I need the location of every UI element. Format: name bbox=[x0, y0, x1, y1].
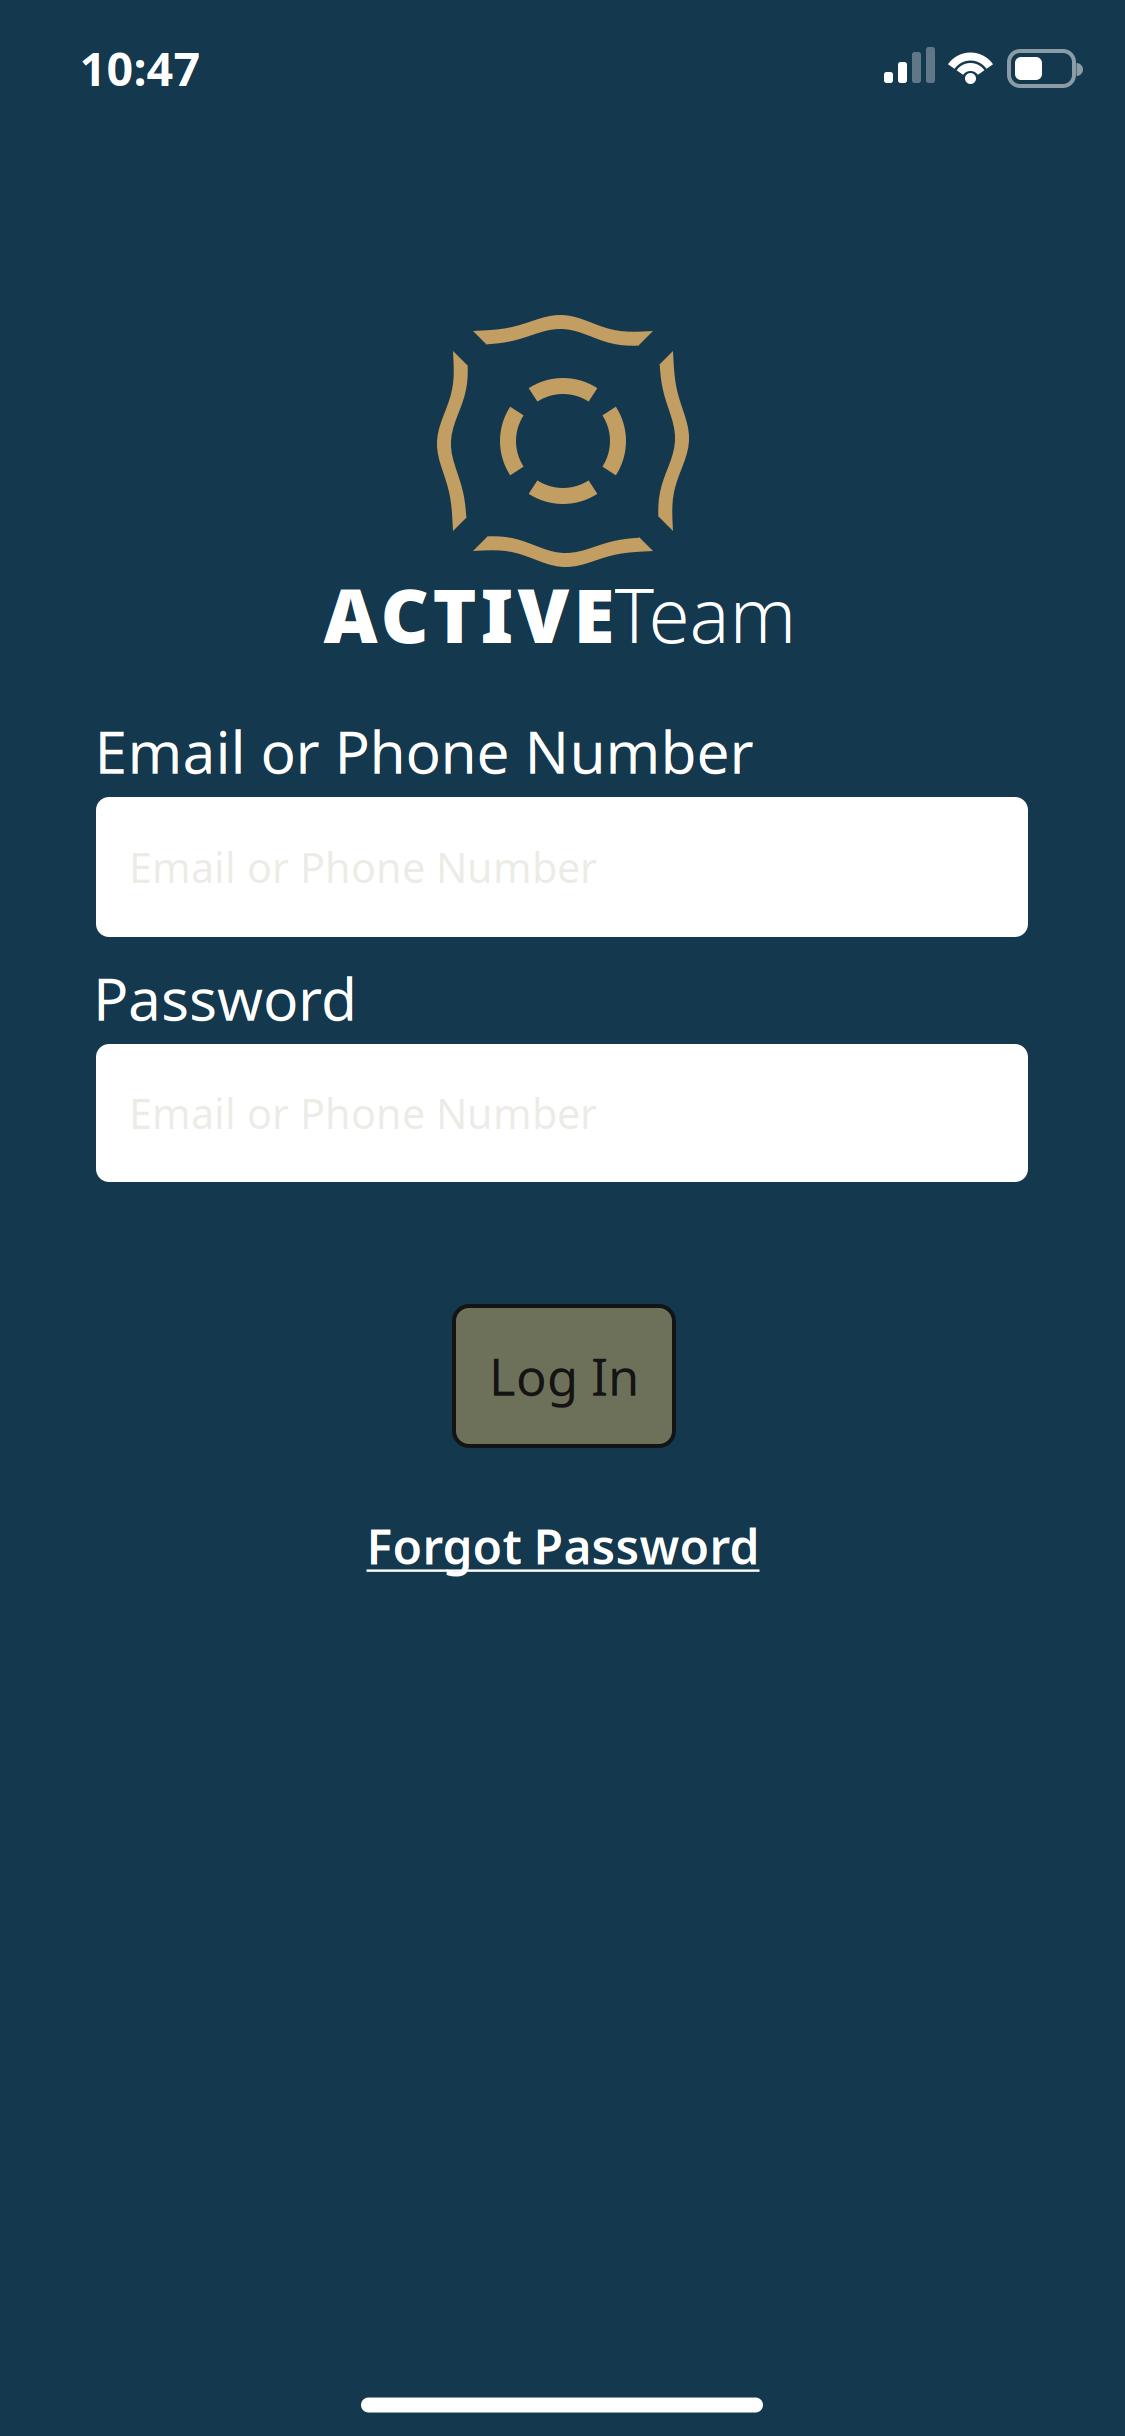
staticText: ACTIVE bbox=[323, 564, 614, 664]
staticText: Forgot Password bbox=[366, 1514, 759, 1578]
staticText: Log In bbox=[489, 1342, 639, 1410]
staticText: Email or Phone Number bbox=[94, 712, 753, 790]
button[interactable]: Log In bbox=[454, 1306, 674, 1446]
button[interactable]: Email or Phone Number bbox=[96, 1044, 1028, 1182]
staticText: 10:47 bbox=[79, 37, 200, 99]
staticText: Team bbox=[614, 564, 796, 664]
staticText: Password bbox=[93, 959, 357, 1037]
button[interactable]: Forgot Password bbox=[366, 1514, 759, 1578]
staticText: Email or Phone Number bbox=[129, 1086, 597, 1140]
staticText: Email or Phone Number bbox=[129, 840, 597, 894]
button[interactable]: Email or Phone Number bbox=[96, 797, 1028, 937]
